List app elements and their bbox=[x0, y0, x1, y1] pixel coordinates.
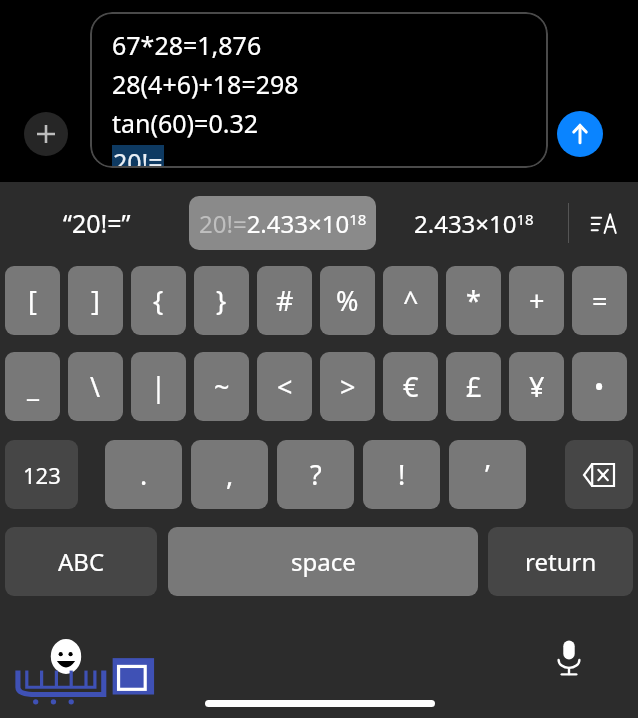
button[interactable]: \ bbox=[68, 352, 123, 421]
button[interactable]: € bbox=[383, 352, 438, 421]
staticText: . bbox=[140, 456, 148, 493]
staticText: % bbox=[336, 282, 359, 319]
staticText: # bbox=[276, 282, 294, 319]
button[interactable]: Voice input bbox=[541, 630, 597, 686]
button[interactable]: “20!=” bbox=[38, 200, 156, 246]
staticText: _ bbox=[27, 368, 39, 405]
button[interactable]: _ bbox=[5, 352, 60, 421]
button[interactable]: = bbox=[572, 266, 627, 335]
staticText: < bbox=[277, 368, 293, 405]
staticText: € bbox=[403, 368, 419, 405]
staticText: ’ bbox=[485, 456, 490, 493]
staticText: return bbox=[525, 545, 597, 578]
button[interactable]: % bbox=[320, 266, 375, 335]
button[interactable]: 67*28=1,876 bbox=[90, 12, 548, 168]
staticText: ] bbox=[91, 282, 100, 319]
staticText: ^ bbox=[403, 282, 419, 319]
button[interactable]: | bbox=[131, 352, 186, 421]
staticText: 2.433×1018 bbox=[414, 207, 534, 240]
button[interactable]: # bbox=[257, 266, 312, 335]
button[interactable]: return bbox=[488, 527, 633, 596]
staticText: { bbox=[153, 282, 164, 319]
button[interactable]: ~ bbox=[194, 352, 249, 421]
button[interactable]: ! bbox=[363, 440, 440, 509]
button[interactable]: • bbox=[572, 352, 627, 421]
button[interactable]: 123 bbox=[5, 440, 78, 509]
staticText: 123 bbox=[23, 460, 61, 490]
staticText: = bbox=[592, 282, 608, 319]
button[interactable]: Backspace bbox=[565, 440, 633, 509]
staticText: , bbox=[226, 456, 234, 493]
button[interactable]: ? bbox=[277, 440, 354, 509]
button[interactable]: Add attachment bbox=[24, 112, 68, 156]
staticText: } bbox=[216, 282, 227, 319]
button[interactable]: , bbox=[191, 440, 268, 509]
button[interactable]: ¥ bbox=[509, 352, 564, 421]
staticText: ! bbox=[398, 456, 406, 493]
staticText: 20!= bbox=[113, 145, 163, 168]
staticText: “20!=” bbox=[63, 206, 131, 240]
button[interactable]: ’ bbox=[449, 440, 526, 509]
staticText: 67*28=1,876 bbox=[112, 28, 262, 62]
button[interactable]: Emoji bbox=[38, 630, 94, 686]
button[interactable]: Text formatting bbox=[580, 200, 628, 248]
staticText: ? bbox=[310, 456, 322, 493]
button[interactable]: space bbox=[168, 527, 478, 596]
button[interactable]: ^ bbox=[383, 266, 438, 335]
staticText: • bbox=[594, 368, 605, 405]
staticText: ~ bbox=[214, 368, 230, 405]
staticText: space bbox=[291, 545, 356, 578]
staticText: | bbox=[151, 368, 166, 405]
button[interactable]: [ bbox=[5, 266, 60, 335]
staticText: £ bbox=[466, 368, 482, 405]
staticText: ABC bbox=[58, 545, 105, 578]
staticText: + bbox=[529, 282, 545, 319]
button[interactable]: > bbox=[320, 352, 375, 421]
staticText: tan(60)=0.32 bbox=[112, 106, 259, 140]
staticText: \ bbox=[90, 368, 101, 405]
staticText: 20!=2.433×1018 bbox=[199, 207, 367, 240]
staticText: [ bbox=[28, 282, 37, 319]
staticText: ¥ bbox=[529, 368, 545, 405]
button[interactable]: < bbox=[257, 352, 312, 421]
button[interactable]: 20!=2.433×1018 bbox=[189, 196, 376, 250]
staticText: 28(4+6)+18=298 bbox=[112, 67, 299, 101]
button[interactable]: 2.433×1018 bbox=[396, 200, 552, 246]
staticText: * bbox=[466, 282, 481, 319]
button[interactable]: ABC bbox=[5, 527, 157, 596]
button[interactable]: } bbox=[194, 266, 249, 335]
button[interactable]: £ bbox=[446, 352, 501, 421]
button[interactable]: { bbox=[131, 266, 186, 335]
button[interactable]: . bbox=[105, 440, 182, 509]
button[interactable]: + bbox=[509, 266, 564, 335]
button[interactable]: * bbox=[446, 266, 501, 335]
button[interactable]: ] bbox=[68, 266, 123, 335]
staticText: > bbox=[340, 368, 356, 405]
button[interactable]: Send bbox=[557, 111, 603, 157]
